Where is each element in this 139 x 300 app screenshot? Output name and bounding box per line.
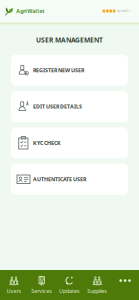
staticText: USER MANAGEMENT (36, 35, 103, 44)
staticText: AgriWallet (16, 7, 44, 15)
staticText: AUTHENTICATE USER (33, 176, 86, 183)
staticText: REGISTER NEW USER (33, 67, 84, 74)
staticText: KYC CHECK (33, 139, 61, 146)
button[interactable]: Updates (56, 270, 83, 300)
button[interactable]: KYC CHECK (11, 127, 128, 158)
button[interactable]: REGISTER NEW USER (11, 55, 128, 86)
button[interactable]: More (111, 270, 139, 300)
button[interactable]: Users (0, 270, 28, 300)
button[interactable]: Services (28, 270, 56, 300)
staticText: Services (31, 287, 52, 294)
button[interactable]: EDIT USER DETAILS (11, 91, 128, 122)
staticText: Users (6, 287, 21, 294)
staticText: Updates (59, 287, 80, 294)
staticText: Supplies (87, 287, 107, 294)
staticText: agriwallet (117, 9, 130, 13)
staticText: EDIT USER DETAILS (33, 103, 82, 110)
button[interactable]: Supplies (83, 270, 111, 300)
button[interactable]: AUTHENTICATE USER (11, 164, 128, 195)
